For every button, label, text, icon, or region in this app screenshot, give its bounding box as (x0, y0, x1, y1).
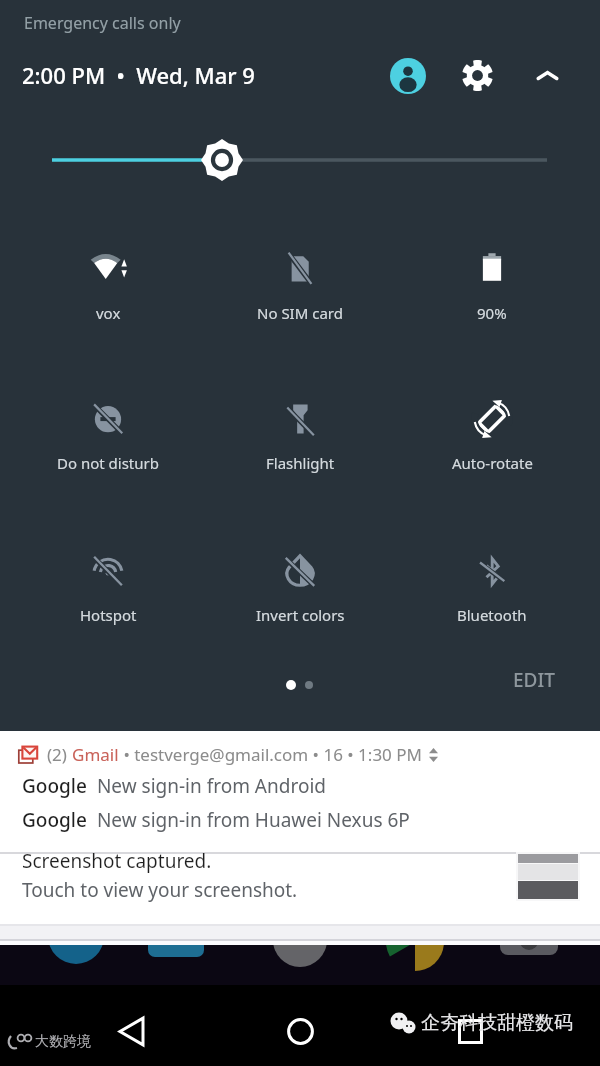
button[interactable]: EDIT (501, 659, 567, 701)
button[interactable]: 90% (396, 250, 588, 323)
button[interactable]: Invert colors (204, 552, 396, 625)
button[interactable]: Home (270, 1001, 330, 1061)
button[interactable] (0, 731, 600, 852)
staticText: Auto-rotate (452, 453, 533, 473)
staticText: New sign-in from Android (87, 773, 326, 799)
staticText: Emergency calls only (24, 12, 181, 34)
button[interactable]: Collapse (527, 55, 567, 95)
staticText: Screenshot captured. (22, 848, 212, 874)
staticText: New sign-in from Huawei Nexus 6P (87, 807, 410, 833)
button[interactable]: Settings (457, 55, 497, 95)
button[interactable]: Recents (440, 1001, 500, 1061)
staticText: Invert colors (256, 605, 345, 625)
staticText: 企夯科技甜橙数码 (421, 1011, 573, 1035)
staticText: Flashlight (266, 453, 335, 473)
staticText: 2:00 PM • Wed, Mar 9 (22, 60, 255, 90)
staticText: Google (22, 807, 87, 833)
staticText: (2) (47, 743, 72, 766)
button[interactable]: Auto-rotate (396, 400, 588, 473)
staticText: Google (22, 773, 87, 799)
staticText: 90% (477, 303, 507, 323)
button[interactable]: Hotspot (12, 552, 204, 625)
staticText: Do not disturb (57, 453, 159, 473)
button[interactable]: Bluetooth (396, 552, 588, 625)
staticText: Bluetooth (457, 605, 527, 625)
button[interactable]: Do not disturb (12, 400, 204, 473)
staticText: vox (96, 303, 121, 323)
button[interactable]: vox (12, 250, 204, 323)
staticText: 大数跨境 (35, 1033, 91, 1051)
staticText: Gmail (72, 743, 119, 766)
button[interactable]: Back (101, 1001, 161, 1061)
staticText: • testverge@gmail.com • 16 • 1:30 PM (119, 743, 422, 766)
staticText: Hotspot (80, 605, 137, 625)
staticText: EDIT (513, 667, 555, 693)
button[interactable]: User profile (390, 58, 426, 94)
button[interactable] (0, 854, 600, 945)
staticText: Touch to view your screenshot. (22, 877, 298, 903)
button[interactable]: No SIM card (204, 250, 396, 323)
staticText: No SIM card (257, 303, 343, 323)
button[interactable]: Flashlight (204, 400, 396, 473)
